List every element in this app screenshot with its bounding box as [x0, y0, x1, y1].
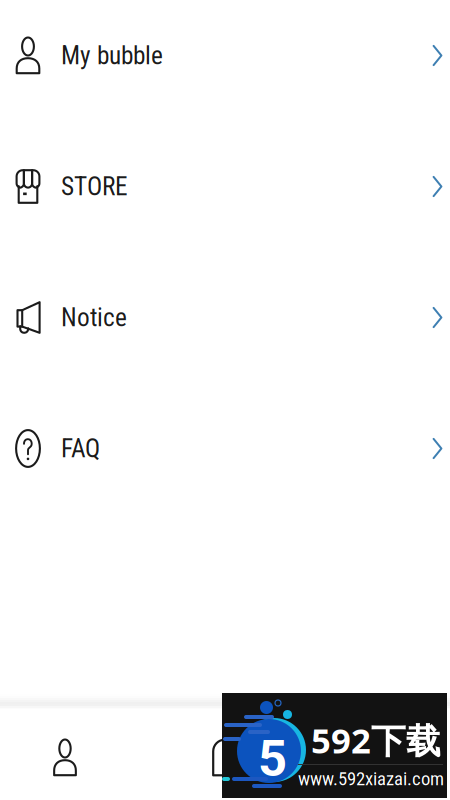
button[interactable]: FAQ [0, 383, 450, 514]
staticText: 592下载 [311, 717, 441, 763]
button[interactable]: Notice [0, 252, 450, 383]
staticText: My bubble [61, 41, 163, 70]
staticText: FAQ [61, 434, 100, 463]
button[interactable]: STORE [0, 121, 450, 252]
staticText: STORE [61, 172, 128, 201]
button[interactable]: My page [35, 709, 95, 800]
staticText: www.592xiazai.com [298, 768, 444, 790]
button[interactable]: My bubble [0, 0, 450, 121]
staticText: Notice [61, 303, 127, 332]
button[interactable]: More [355, 709, 415, 800]
button[interactable]: Store [195, 709, 255, 800]
staticText: 5 [258, 729, 287, 788]
